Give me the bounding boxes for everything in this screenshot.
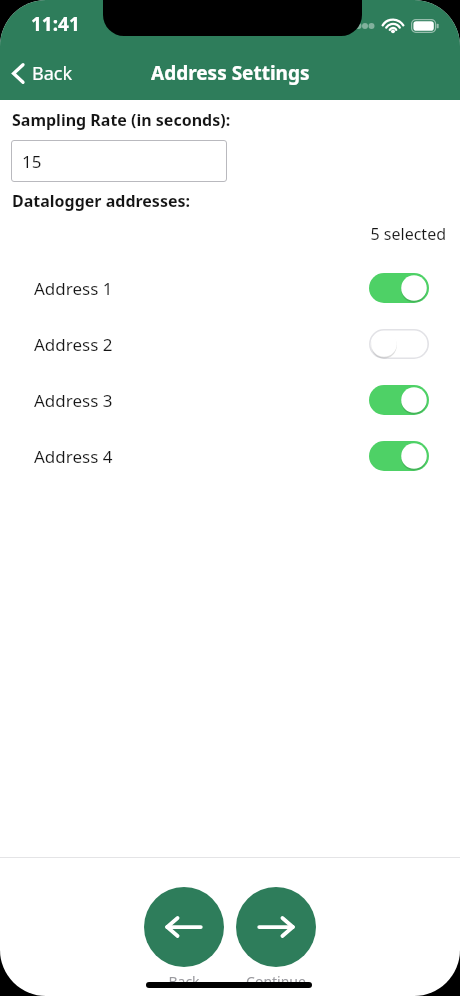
staticText: Back — [144, 972, 224, 991]
staticText: Address 3 — [34, 389, 113, 412]
button[interactable]: Back — [144, 887, 224, 967]
button[interactable]: Toggle off — [369, 329, 429, 359]
staticText: Address 4 — [34, 445, 113, 468]
button[interactable]: Address 2 — [0, 316, 460, 372]
button[interactable]: Toggle on — [369, 273, 429, 303]
staticText: 11:41 — [31, 11, 80, 37]
button[interactable]: Address 4 — [0, 428, 460, 484]
staticText: 5 selected — [0, 223, 446, 245]
staticText: Continue — [236, 972, 316, 991]
staticText: 15 — [22, 150, 42, 173]
button[interactable]: Address 3 — [0, 372, 460, 428]
button[interactable]: Toggle on — [369, 441, 429, 471]
button[interactable]: 15 — [11, 140, 227, 182]
button[interactable]: Toggle on — [369, 385, 429, 415]
button[interactable]: Continue — [236, 887, 316, 967]
staticText: Back — [32, 61, 73, 86]
staticText: Datalogger addresses: — [12, 190, 191, 212]
staticText: Address 2 — [34, 333, 113, 356]
staticText: Address Settings — [151, 60, 310, 86]
staticText: Sampling Rate (in seconds): — [12, 109, 231, 131]
button[interactable]: Address 1 — [0, 260, 460, 316]
button[interactable]: Back — [0, 53, 85, 94]
staticText: Address 1 — [34, 277, 113, 300]
